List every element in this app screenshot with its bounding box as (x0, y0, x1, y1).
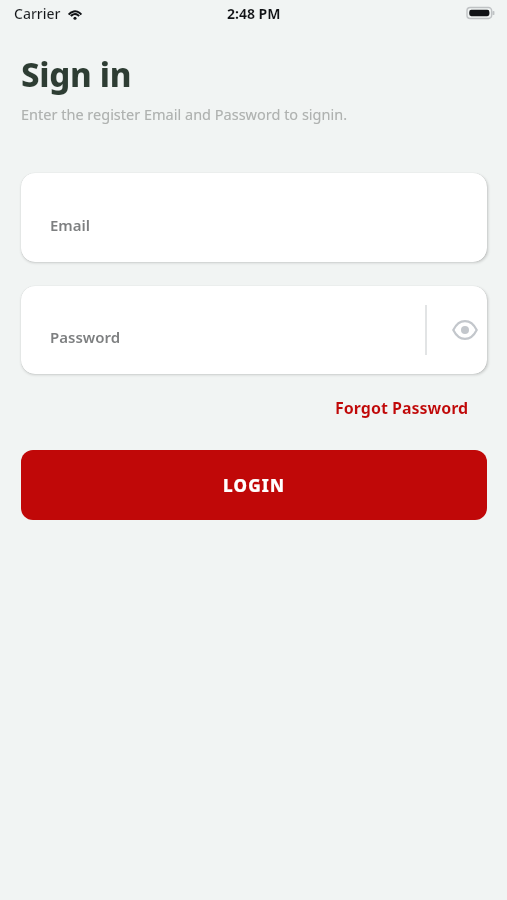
staticText: Enter the register Email and Password to… (21, 104, 348, 124)
button[interactable]: Email (21, 173, 487, 262)
button[interactable]: Show password (443, 308, 487, 352)
staticText: Sign in (21, 52, 132, 97)
staticText: LOGIN (223, 474, 286, 497)
staticText: Forgot Password (335, 397, 469, 419)
staticText: Email (50, 215, 91, 235)
button[interactable]: LOGIN (21, 450, 487, 520)
staticText: 2:48 PM (227, 4, 281, 23)
staticText: Password (50, 327, 121, 347)
button[interactable]: Forgot Password (329, 392, 475, 424)
staticText: Carrier (14, 4, 61, 23)
button[interactable]: Password (21, 286, 487, 374)
